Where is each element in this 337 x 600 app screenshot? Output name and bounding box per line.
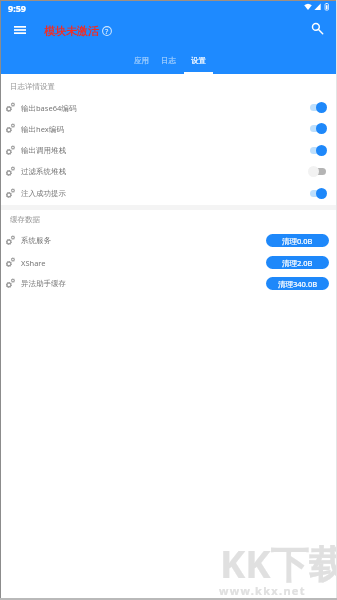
- button[interactable]: Menu: [9, 19, 31, 41]
- button[interactable]: Search: [308, 19, 330, 41]
- button[interactable]: XShare: [0, 252, 337, 273]
- button[interactable]: 注入成功提示: [0, 183, 337, 204]
- button[interactable]: 日志: [153, 50, 183, 74]
- button[interactable]: 设置: [183, 50, 213, 74]
- staticText: 应用: [134, 56, 149, 65]
- button[interactable]: 模块未激活: [44, 24, 112, 38]
- staticText: 输出base64编码: [21, 103, 77, 113]
- staticText: 缓存数据: [10, 215, 40, 224]
- button[interactable]: 输出调用堆栈: [0, 140, 337, 161]
- staticText: 过滤系统堆栈: [21, 167, 66, 176]
- staticText: 注入成功提示: [21, 189, 66, 198]
- staticText: 输出hex编码: [21, 124, 64, 134]
- staticText: 清理340.0B: [278, 279, 318, 289]
- staticText: 9:59: [8, 2, 26, 14]
- button[interactable]: 清理0.0B: [266, 234, 329, 247]
- staticText: 系统服务: [21, 236, 51, 245]
- staticText: KK下载: [220, 537, 337, 589]
- button[interactable]: 输出hex编码: [0, 118, 337, 139]
- staticText: 日志: [161, 56, 176, 65]
- staticText: 设置: [191, 56, 206, 65]
- staticText: 清理2.0B: [282, 258, 313, 268]
- button[interactable]: 系统服务: [0, 230, 337, 251]
- staticText: XShare: [21, 258, 46, 268]
- staticText: 输出调用堆栈: [21, 146, 66, 155]
- button[interactable]: 清理2.0B: [266, 256, 329, 269]
- button[interactable]: 异法助手缓存: [0, 273, 337, 294]
- staticText: 模块未激活: [44, 24, 99, 38]
- staticText: ?: [105, 26, 109, 36]
- staticText: 日志详情设置: [10, 82, 55, 91]
- button[interactable]: 过滤系统堆栈: [0, 161, 337, 182]
- staticText: 异法助手缓存: [21, 279, 66, 288]
- button[interactable]: 清理340.0B: [266, 277, 329, 290]
- staticText: 清理0.0B: [282, 236, 313, 246]
- button[interactable]: 应用: [126, 50, 156, 74]
- button[interactable]: 输出base64编码: [0, 97, 337, 118]
- staticText: www.kkx.net: [219, 583, 306, 598]
